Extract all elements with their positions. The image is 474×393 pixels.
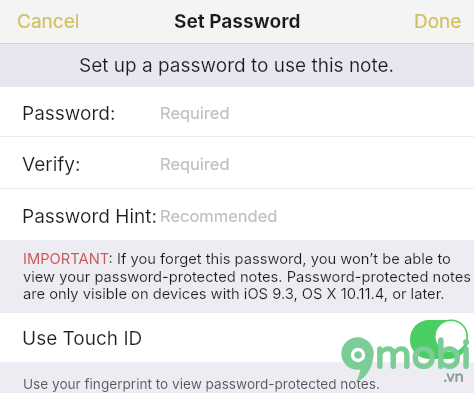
staticText: Set Password xyxy=(174,10,301,33)
staticText: IMPORTANT: If you forget this password, … xyxy=(23,250,474,302)
staticText: Recommended xyxy=(160,206,278,226)
staticText: Done xyxy=(414,10,462,33)
button[interactable]: Verify: xyxy=(0,137,474,188)
staticText: Required xyxy=(160,154,230,174)
button[interactable]: Cancel xyxy=(0,3,92,40)
staticText: mobi xyxy=(374,332,471,380)
button[interactable]: Password Hint: xyxy=(0,189,474,240)
button[interactable]: Password: xyxy=(0,87,474,136)
staticText: Password Hint: xyxy=(22,205,157,228)
staticText: Required xyxy=(160,103,230,123)
staticText: Password: xyxy=(22,102,116,125)
staticText: .vn xyxy=(443,368,464,386)
staticText: Use your fingerprint to view password-pr… xyxy=(23,376,380,392)
staticText: Set up a password to use this note. xyxy=(79,54,395,77)
staticText: Use Touch ID xyxy=(22,327,143,350)
button[interactable]: Use Touch ID xyxy=(0,313,474,362)
staticText: Cancel xyxy=(17,10,80,33)
staticText: Verify: xyxy=(22,153,81,176)
button[interactable]: Done xyxy=(402,3,474,40)
